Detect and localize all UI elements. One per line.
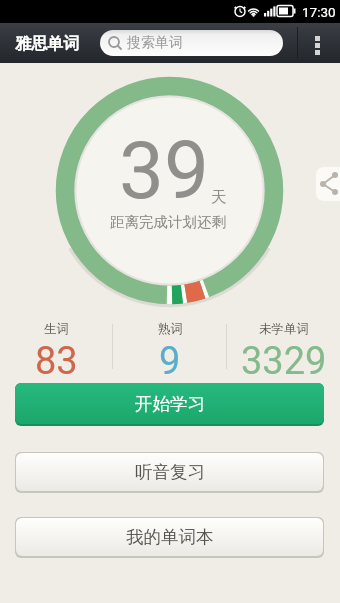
staticText: 距离完成计划还剩 xyxy=(110,213,226,231)
staticText: 熟词 xyxy=(158,321,183,337)
staticText: 83 xyxy=(35,339,78,377)
staticText: 9 xyxy=(159,339,181,377)
button[interactable]: 83 xyxy=(0,339,113,377)
staticText: 开始学习 xyxy=(135,393,205,415)
button[interactable] xyxy=(283,23,340,63)
staticText: 搜索单词 xyxy=(127,34,183,52)
button[interactable]: 开始学习 xyxy=(15,383,324,424)
staticText: 3329 xyxy=(241,339,327,377)
staticText: 生词 xyxy=(44,321,69,337)
button[interactable] xyxy=(316,167,340,201)
staticText: 听音复习 xyxy=(135,461,205,483)
staticText: 39 xyxy=(119,124,209,218)
staticText: 天 xyxy=(211,187,227,207)
button[interactable]: 我的单词本 xyxy=(16,518,323,556)
staticText: 17:30 xyxy=(302,4,336,20)
staticText: 我的单词本 xyxy=(126,526,214,548)
button[interactable]: 9 xyxy=(113,339,227,377)
button[interactable]: 搜索单词 xyxy=(100,30,283,56)
button[interactable]: 听音复习 xyxy=(16,453,323,491)
staticText: 雅思单词 xyxy=(15,34,79,54)
button[interactable]: 3329 xyxy=(227,339,340,377)
staticText: 未学单词 xyxy=(259,321,309,337)
